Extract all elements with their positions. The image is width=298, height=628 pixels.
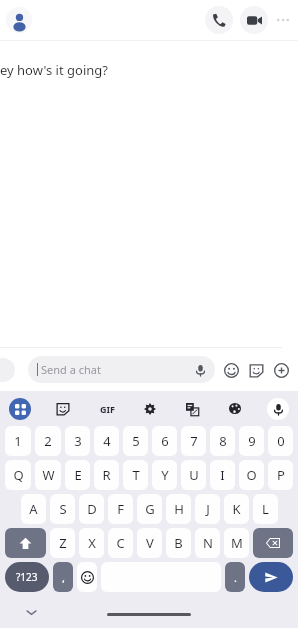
button[interactable]: 0 <box>268 426 293 456</box>
staticText: M <box>231 534 243 552</box>
staticText: T <box>132 466 140 484</box>
button[interactable]: R <box>94 460 119 490</box>
button[interactable]: Stickers <box>247 361 265 379</box>
button[interactable]: Voice typing <box>267 398 289 420</box>
button[interactable]: W <box>35 460 61 490</box>
staticText: 5 <box>132 432 140 450</box>
button[interactable]: Translate <box>182 399 202 419</box>
button[interactable]: 8 <box>210 426 235 456</box>
staticText: Y <box>161 466 169 484</box>
staticText: B <box>174 534 183 552</box>
staticText: L <box>262 500 269 518</box>
staticText: G <box>145 500 155 518</box>
button[interactable]: F <box>108 494 133 524</box>
button[interactable]: Video call <box>240 6 268 34</box>
staticText: W <box>42 466 55 484</box>
staticText: F <box>117 500 124 518</box>
button[interactable]: Themes <box>225 399 245 419</box>
button[interactable]: Camera <box>0 358 15 382</box>
button[interactable]: O <box>239 460 264 490</box>
button[interactable]: 2 <box>35 426 61 456</box>
button[interactable]: E <box>65 460 90 490</box>
button[interactable]: Emoji <box>77 562 97 592</box>
button[interactable]: 9 <box>239 426 264 456</box>
staticText: 7 <box>190 432 198 450</box>
button[interactable]: J <box>195 494 220 524</box>
button[interactable]: Emoji <box>222 361 240 379</box>
staticText: I <box>220 466 225 484</box>
button[interactable]: Voice input <box>194 364 206 376</box>
button[interactable]: Profile <box>6 7 32 33</box>
button[interactable]: U <box>181 460 206 490</box>
staticText: Z <box>59 534 67 552</box>
staticText: J <box>206 500 210 518</box>
staticText: S <box>59 500 67 518</box>
staticText: R <box>102 466 111 484</box>
button[interactable]: Z <box>50 528 75 558</box>
staticText: , <box>62 570 65 585</box>
button[interactable]: Shift <box>5 528 46 558</box>
button[interactable]: ?123 <box>5 562 49 592</box>
button[interactable]: Q <box>5 460 31 490</box>
button[interactable]: More options <box>274 11 292 29</box>
staticText: 2 <box>44 432 52 450</box>
button[interactable]: Keyboard options <box>9 398 31 420</box>
button[interactable]: A <box>21 494 46 524</box>
staticText: E <box>74 466 82 484</box>
button[interactable]: H <box>166 494 191 524</box>
staticText: C <box>116 534 125 552</box>
button[interactable]: Settings <box>140 399 160 419</box>
button[interactable]: Hide keyboard <box>23 604 39 620</box>
button[interactable]: Y <box>152 460 177 490</box>
button[interactable]: Send <box>249 562 293 592</box>
button[interactable]: P <box>268 460 293 490</box>
button[interactable]: I <box>210 460 235 490</box>
staticText: . <box>234 570 237 585</box>
staticText: GIF <box>100 403 115 415</box>
button[interactable]: . <box>225 562 245 592</box>
button[interactable]: Add attachment <box>272 361 290 379</box>
button[interactable]: GIF <box>96 398 118 420</box>
button[interactable]: M <box>224 528 249 558</box>
button[interactable]: T <box>123 460 148 490</box>
button[interactable]: X <box>79 528 104 558</box>
button[interactable]: Send a chat <box>28 356 215 383</box>
staticText: P <box>277 466 285 484</box>
button[interactable]: 5 <box>123 426 148 456</box>
staticText: Q <box>13 466 24 484</box>
button[interactable]: Backspace <box>253 528 293 558</box>
staticText: 9 <box>248 432 256 450</box>
button[interactable]: 3 <box>65 426 90 456</box>
button[interactable]: 7 <box>181 426 206 456</box>
staticText: N <box>203 534 213 552</box>
button[interactable]: Call <box>205 6 233 34</box>
staticText: 0 <box>277 432 285 450</box>
button[interactable]: G <box>137 494 162 524</box>
staticText: K <box>232 500 241 518</box>
staticText: A <box>29 500 38 518</box>
staticText: 4 <box>103 432 111 450</box>
staticText: H <box>174 500 184 518</box>
staticText: Send a chat <box>41 362 101 377</box>
button[interactable]: D <box>79 494 104 524</box>
button[interactable]: N <box>195 528 220 558</box>
button[interactable]: , <box>53 562 73 592</box>
button[interactable]: 4 <box>94 426 119 456</box>
button[interactable]: L <box>253 494 278 524</box>
button[interactable]: Stickers <box>53 399 73 419</box>
staticText: X <box>88 534 96 552</box>
button[interactable]: 6 <box>152 426 177 456</box>
button[interactable]: V <box>137 528 162 558</box>
staticText: 3 <box>74 432 82 450</box>
staticText: D <box>87 500 97 518</box>
button[interactable]: B <box>166 528 191 558</box>
staticText: 8 <box>219 432 227 450</box>
staticText: ey how's it going? <box>0 61 108 79</box>
staticText: ?123 <box>16 570 38 584</box>
button[interactable]: S <box>50 494 75 524</box>
staticText: V <box>146 534 154 552</box>
button[interactable]: C <box>108 528 133 558</box>
button[interactable]: K <box>224 494 249 524</box>
button[interactable]: 1 <box>5 426 31 456</box>
